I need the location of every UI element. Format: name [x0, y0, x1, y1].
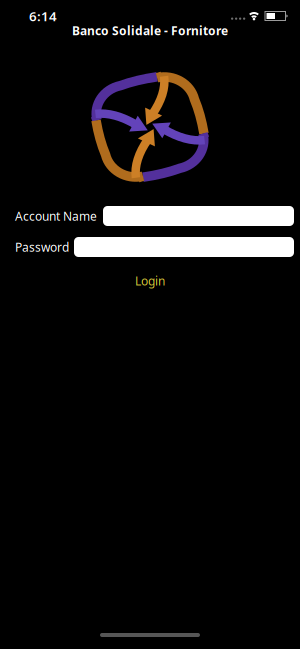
staticText: Account Name: [15, 208, 97, 224]
staticText: Login: [135, 273, 165, 289]
button[interactable]: Account Name text field: [103, 206, 294, 226]
staticText: Password: [15, 239, 69, 255]
button[interactable]: Login: [135, 273, 165, 289]
button[interactable]: Password text field: [74, 237, 294, 257]
staticText: 6:14: [29, 7, 57, 25]
staticText: Banco Solidale - Fornitore: [72, 22, 228, 38]
